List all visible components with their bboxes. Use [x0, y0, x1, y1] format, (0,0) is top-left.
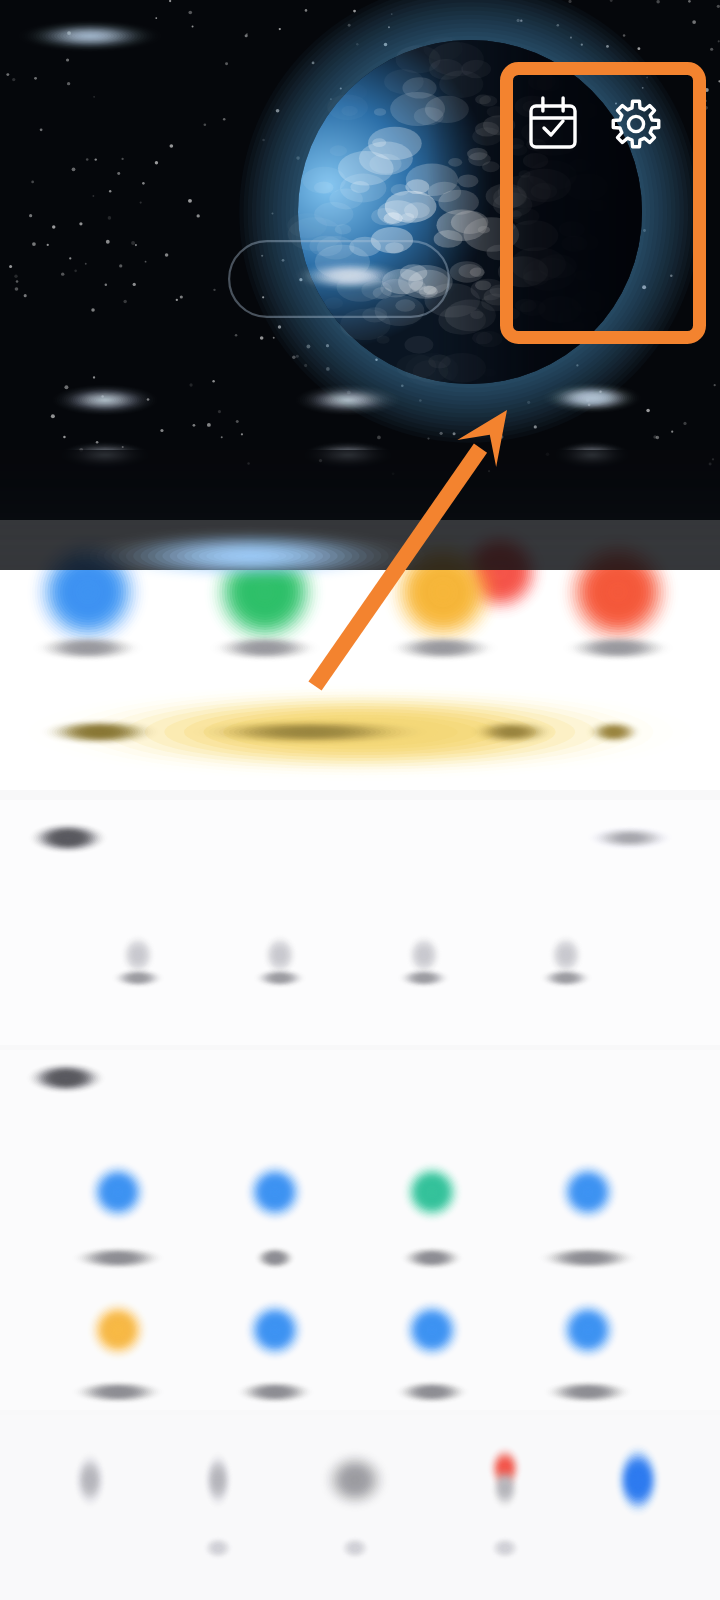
button[interactable]: Settings — [605, 94, 667, 156]
button[interactable]: Calendar — [522, 94, 584, 156]
button[interactable]: Service 8 — [510, 1280, 666, 1418]
button[interactable]: Service 5 — [40, 1280, 196, 1418]
button[interactable]: Service 4 — [510, 1140, 666, 1280]
button[interactable]: Service 7 — [354, 1280, 510, 1418]
button[interactable]: Tab 4 — [439, 1430, 571, 1590]
button[interactable]: Notice — [14, 690, 706, 776]
button[interactable]: Tab 2 — [152, 1430, 284, 1590]
button[interactable]: Service 1 — [40, 1140, 196, 1280]
button[interactable]: Service 6 — [197, 1280, 353, 1418]
button[interactable]: Tab 5 — [572, 1430, 704, 1590]
button[interactable]: Quick action 4 — [552, 526, 684, 666]
button[interactable]: Service 2 — [197, 1140, 353, 1280]
button[interactable]: Tab 3 — [289, 1430, 421, 1590]
button[interactable]: Quick action 3 — [377, 526, 509, 666]
button[interactable]: Tab 1 — [24, 1430, 156, 1590]
button[interactable]: Quick action 1 — [22, 526, 154, 666]
button[interactable]: Log in or register — [228, 240, 450, 318]
button[interactable]: Service 3 — [354, 1140, 510, 1280]
button[interactable]: Quick action 2 — [199, 526, 331, 666]
